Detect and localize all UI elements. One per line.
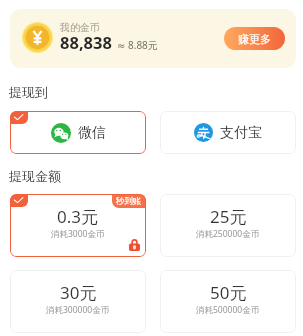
staticText: 消耗250000金币 xyxy=(196,228,260,240)
button[interactable]: 25元 xyxy=(160,194,296,257)
staticText: 30元 xyxy=(60,281,97,304)
other: 锁定 xyxy=(129,238,140,251)
staticText: 25元 xyxy=(210,205,247,228)
staticText: 0.3元 xyxy=(57,205,99,228)
staticText: 50元 xyxy=(210,281,247,304)
button[interactable]: 赚更多 xyxy=(224,27,285,50)
button[interactable]: 50元 xyxy=(160,270,296,333)
staticText: 赚更多 xyxy=(238,32,271,46)
button[interactable]: 30元 xyxy=(10,270,146,333)
staticText: 消耗3000金币 xyxy=(51,228,105,240)
staticText: 提现金额 xyxy=(9,168,61,184)
staticText: 消耗300000金币 xyxy=(46,304,110,316)
staticText: 支付宝 xyxy=(220,124,262,142)
staticText: 消耗500000金币 xyxy=(196,304,260,316)
staticText: 88,838 xyxy=(60,31,112,53)
staticText: 微信 xyxy=(78,124,106,142)
staticText: 提现到 xyxy=(9,84,48,100)
staticText: 我的金币 xyxy=(60,21,100,34)
button[interactable]: 微信 xyxy=(10,111,146,154)
button[interactable]: 0.3元 xyxy=(10,194,146,257)
button[interactable]: 支付宝 xyxy=(160,111,296,154)
button[interactable]: 我的金币 xyxy=(10,9,296,68)
staticText: 秒到账 xyxy=(116,196,142,207)
staticText: ≈ 8.88元 xyxy=(117,38,158,52)
